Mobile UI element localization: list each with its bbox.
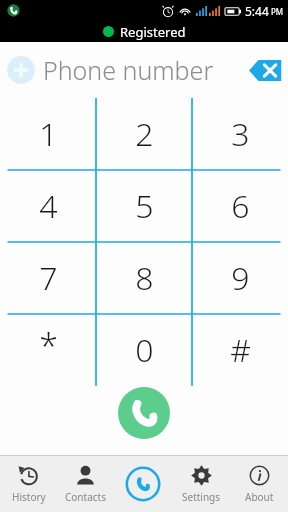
button[interactable]: Contacts xyxy=(57,456,114,512)
button[interactable]: * xyxy=(0,314,96,386)
button[interactable]: 3 xyxy=(192,98,288,170)
button[interactable]: Add plus sign xyxy=(6,55,36,85)
staticText: About xyxy=(245,490,274,504)
staticText: 5 xyxy=(135,184,154,228)
button[interactable]: 1 xyxy=(0,98,96,170)
button[interactable]: 8 xyxy=(96,242,192,314)
button[interactable]: History xyxy=(0,456,57,512)
button[interactable]: About xyxy=(230,456,288,512)
staticText: Registered xyxy=(120,23,186,41)
button[interactable]: 2 xyxy=(96,98,192,170)
staticText: History xyxy=(12,490,46,504)
staticText: # xyxy=(230,328,251,372)
staticText: Contacts xyxy=(65,490,106,504)
button[interactable]: Dialer xyxy=(114,456,172,512)
staticText: 7 xyxy=(39,256,58,300)
staticText: 0 xyxy=(135,328,154,372)
staticText: 8 xyxy=(135,256,154,300)
button[interactable]: Settings xyxy=(172,456,230,512)
button[interactable]: 9 xyxy=(192,242,288,314)
button[interactable]: 5 xyxy=(96,170,192,242)
staticText: Phone number xyxy=(43,53,214,87)
staticText: 3 xyxy=(231,112,250,156)
button[interactable]: 4 xyxy=(0,170,96,242)
staticText: 6 xyxy=(231,184,250,228)
button[interactable]: Call xyxy=(118,387,170,439)
staticText: * xyxy=(39,323,58,369)
button[interactable]: 6 xyxy=(192,170,288,242)
button[interactable]: Backspace xyxy=(248,57,283,84)
staticText: 2 xyxy=(135,112,154,156)
staticText: 9 xyxy=(231,256,250,300)
staticText: PM xyxy=(271,6,284,17)
staticText: 1 xyxy=(39,112,58,156)
staticText: Settings xyxy=(182,490,221,504)
button[interactable]: 0 xyxy=(96,314,192,386)
button[interactable]: 7 xyxy=(0,242,96,314)
staticText: 5:44 xyxy=(245,3,269,19)
button[interactable]: # xyxy=(192,314,288,386)
staticText: 4 xyxy=(39,184,58,228)
